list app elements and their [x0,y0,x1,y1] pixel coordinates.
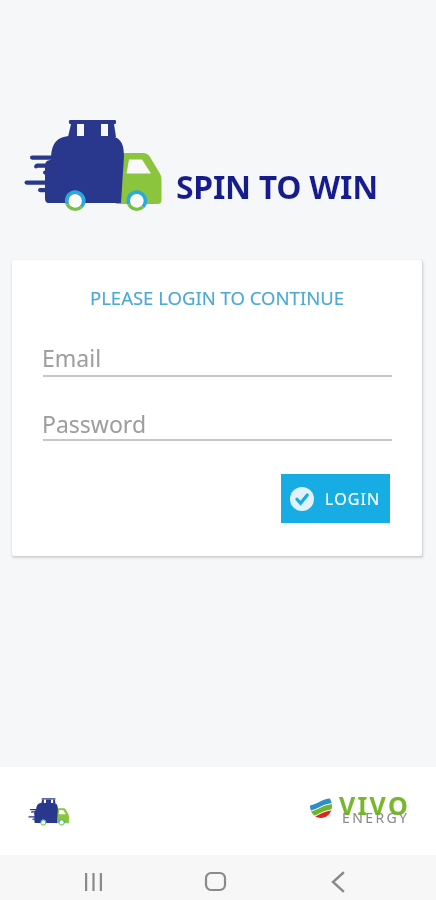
staticText: PLEASE LOGIN TO CONTINUE [12,285,422,310]
staticText: ENERGY [342,808,410,827]
button[interactable]: Home [190,860,240,900]
button[interactable]: LOGIN [281,474,390,523]
staticText: VIVO [339,788,410,822]
staticText: SPIN TO WIN [176,165,378,209]
button[interactable]: Back [313,860,363,900]
staticText: Email [42,342,102,373]
button[interactable]: Recent apps [68,860,118,900]
staticText: LOGIN [325,488,381,510]
staticText: Password [42,408,147,439]
